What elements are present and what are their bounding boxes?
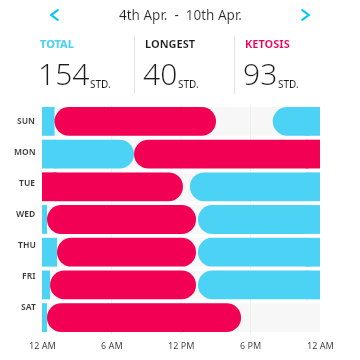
staticText: STD. [278, 77, 299, 91]
button[interactable]: MON [0, 136, 360, 167]
staticText: KETOSIS [245, 36, 290, 51]
button[interactable]: LONGEST [135, 30, 234, 100]
staticText: LONGEST [145, 36, 196, 51]
button[interactable]: TOTAL [30, 30, 134, 100]
button[interactable]: Next week [292, 1, 320, 29]
button[interactable]: Previous week [40, 1, 68, 29]
staticText: STD. [90, 77, 111, 91]
button[interactable]: THU [0, 229, 360, 260]
button[interactable]: FRI [0, 260, 360, 291]
staticText: 40 [143, 53, 178, 94]
button[interactable]: KETOSIS [235, 30, 334, 100]
staticText: 12 AM [29, 339, 56, 351]
staticText: 12 AM [307, 339, 334, 351]
staticText: SUN [17, 115, 36, 127]
button[interactable]: WED [0, 198, 360, 229]
button[interactable]: TUE [0, 167, 360, 198]
button[interactable]: SUN [0, 105, 360, 136]
staticText: TOTAL [40, 36, 74, 51]
staticText: 154 [38, 53, 90, 94]
staticText: SAT [21, 301, 36, 313]
staticText: MON [14, 146, 36, 158]
staticText: 12 PM [168, 339, 195, 351]
staticText: 6 PM [240, 339, 262, 351]
staticText: TUE [19, 177, 36, 189]
staticText: FRI [22, 270, 36, 282]
staticText: 6 AM [101, 339, 123, 351]
staticText: THU [18, 239, 36, 251]
staticText: 93 [243, 53, 278, 94]
staticText: WED [16, 208, 36, 220]
staticText: 4th Apr. - 10th Apr. [119, 6, 242, 24]
button[interactable]: SAT [0, 291, 360, 322]
staticText: STD. [178, 77, 199, 91]
